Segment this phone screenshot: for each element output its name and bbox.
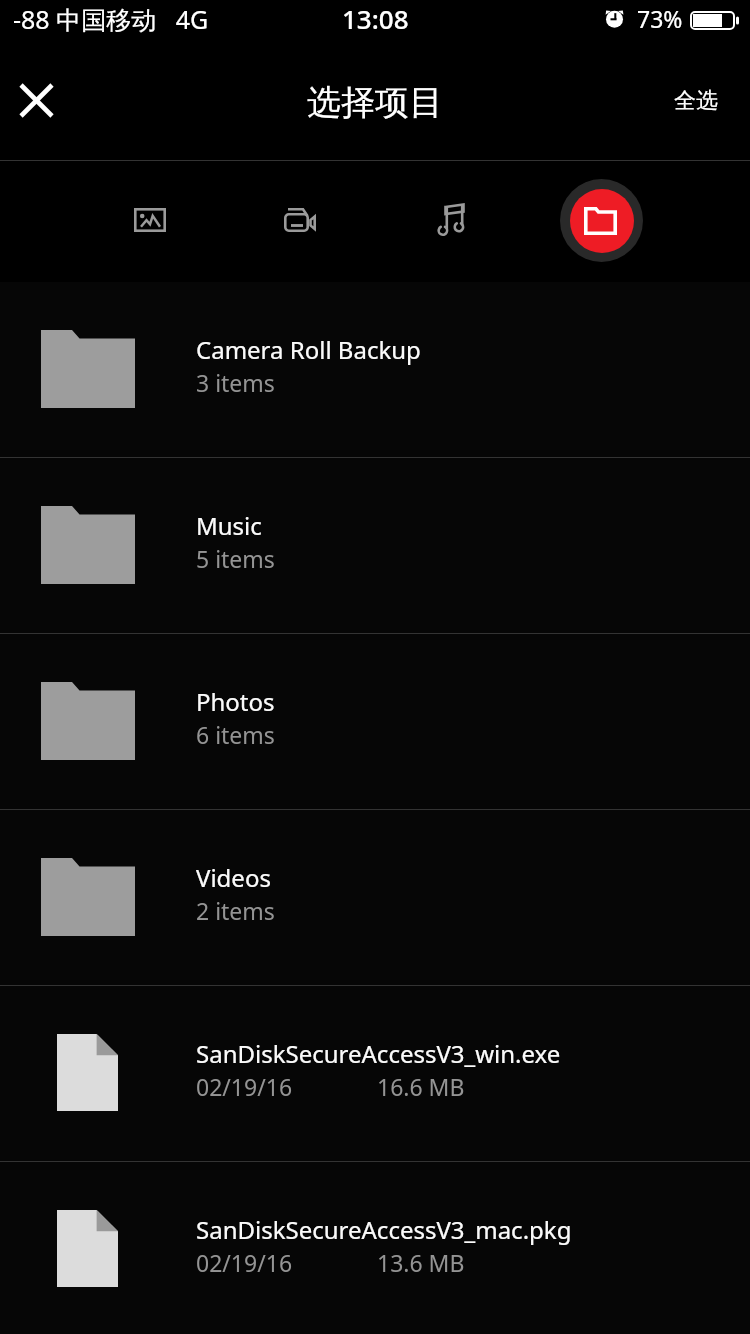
button[interactable]: Music: [0, 458, 750, 633]
staticText: 73%: [637, 3, 683, 34]
staticText: Photos: [196, 685, 275, 718]
staticText: SanDiskSecureAccessV3_mac.pkg: [196, 1213, 572, 1246]
button[interactable]: Music: [390, 161, 510, 282]
staticText: Camera Roll Backup: [196, 333, 421, 366]
staticText: 5 items: [196, 543, 275, 574]
button[interactable]: Videos: [240, 161, 360, 282]
button[interactable]: Videos: [0, 810, 750, 985]
staticText: 02/19/16: [196, 1071, 293, 1102]
button[interactable]: Files: [560, 179, 643, 262]
button[interactable]: 全选: [674, 88, 718, 116]
button[interactable]: SanDiskSecureAccessV3_win.exe: [0, 986, 750, 1161]
staticText: Videos: [196, 861, 271, 894]
staticText: Music: [196, 509, 262, 542]
staticText: 选择项目: [307, 81, 443, 124]
staticText: 16.6 MB: [377, 1071, 465, 1102]
button[interactable]: Close: [4, 70, 68, 134]
staticText: 2 items: [196, 895, 275, 926]
button[interactable]: SanDiskSecureAccessV3_mac.pkg: [0, 1162, 750, 1334]
staticText: -88 中国移动 4G: [13, 2, 209, 36]
staticText: 13:08: [342, 1, 409, 36]
staticText: 6 items: [196, 719, 275, 750]
staticText: SanDiskSecureAccessV3_win.exe: [196, 1037, 561, 1070]
button[interactable]: Photos: [0, 634, 750, 809]
staticText: 02/19/16: [196, 1247, 293, 1278]
button[interactable]: Images: [90, 161, 210, 282]
staticText: 3 items: [196, 367, 275, 398]
button[interactable]: Camera Roll Backup: [0, 282, 750, 457]
staticText: 全选: [674, 87, 718, 115]
staticText: 13.6 MB: [377, 1247, 465, 1278]
